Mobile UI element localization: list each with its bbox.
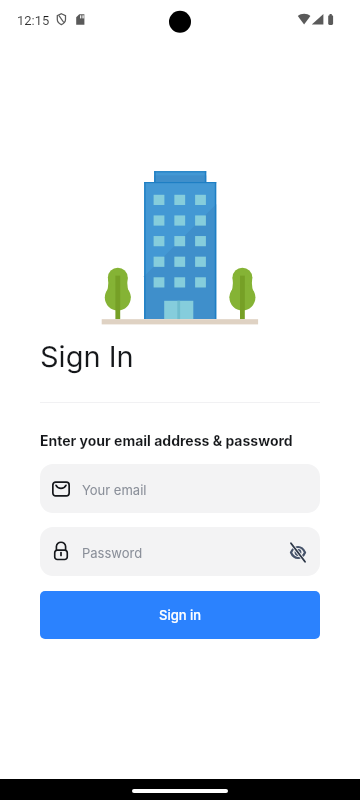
staticText: 12:15 (17, 13, 50, 28)
button[interactable]: Sign in (40, 591, 320, 639)
staticText: Sign In (40, 339, 134, 374)
staticText: Password (82, 545, 143, 561)
staticText: Sign in (159, 607, 202, 623)
staticText: Your email (82, 482, 147, 498)
button[interactable]: Your email (40, 464, 320, 513)
button[interactable]: Show password (280, 532, 306, 572)
button[interactable]: Password (40, 527, 320, 576)
staticText: Enter your email address & password (40, 432, 293, 449)
